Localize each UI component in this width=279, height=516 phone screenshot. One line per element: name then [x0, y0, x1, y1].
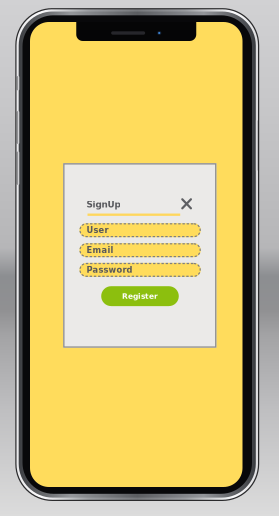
button[interactable]: Register: [101, 286, 179, 306]
button[interactable]: Close: [179, 196, 194, 211]
button[interactable]: Email: [79, 243, 201, 257]
staticText: User: [86, 225, 108, 235]
staticText: Email: [86, 245, 113, 255]
button[interactable]: Password: [79, 263, 201, 277]
button[interactable]: User: [79, 223, 201, 237]
staticText: Password: [86, 265, 132, 275]
staticText: SignUp: [86, 199, 120, 210]
staticText: Register: [122, 292, 158, 300]
